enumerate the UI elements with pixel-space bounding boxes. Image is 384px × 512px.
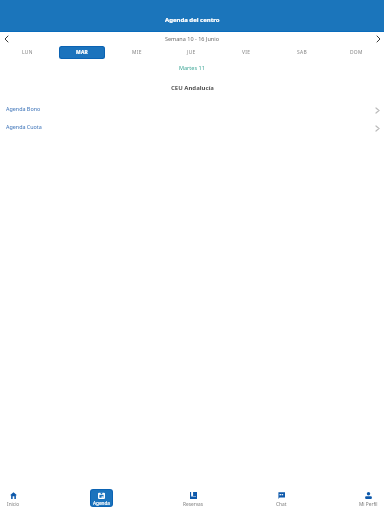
staticText: MAR [76, 49, 89, 56]
button[interactable]: MAR [54, 45, 109, 59]
button[interactable]: LUN [0, 45, 54, 59]
button[interactable]: Agenda [86, 482, 116, 512]
staticText: CEU Andalucía [171, 84, 214, 92]
staticText: JUE [187, 49, 196, 56]
button[interactable]: MIE [109, 45, 164, 59]
staticText: Agenda Bono [6, 105, 41, 112]
staticText: Agenda del centro [165, 16, 220, 24]
staticText: LUN [22, 49, 33, 56]
staticText: DOM [350, 49, 363, 56]
staticText: MIE [132, 49, 142, 56]
staticText: Inicio [7, 501, 20, 508]
button[interactable]: Reservas [178, 482, 208, 512]
staticText: Semana 10 - 16 Junio [165, 35, 219, 42]
button[interactable]: Semana anterior [0, 32, 12, 45]
button[interactable]: Agenda Cuota [0, 117, 384, 135]
button[interactable]: JUE [164, 45, 219, 59]
staticText: Agenda [93, 500, 110, 506]
button[interactable]: DOM [329, 45, 384, 59]
staticText: VIE [242, 49, 251, 56]
staticText: Agenda Cuota [6, 123, 42, 130]
button[interactable]: VIE [219, 45, 274, 59]
button[interactable]: Inicio [0, 482, 28, 512]
button[interactable]: Chat [266, 482, 296, 512]
button[interactable]: Agenda Bono [0, 99, 384, 117]
button[interactable]: SAB [274, 45, 329, 59]
staticText: Martes 11 [179, 64, 205, 71]
button[interactable]: Semana siguiente [372, 32, 384, 45]
staticText: Mi Perfil [359, 501, 378, 508]
button[interactable]: Mi Perfil [353, 482, 383, 512]
staticText: SAB [297, 49, 307, 56]
staticText: Chat [276, 501, 287, 508]
staticText: Reservas [183, 501, 204, 508]
